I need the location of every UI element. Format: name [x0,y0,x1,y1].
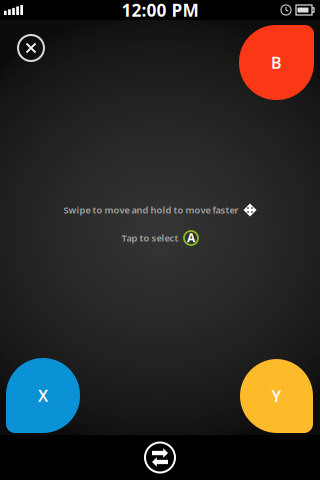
staticText: Swipe to move and hold to move faster [63,204,238,216]
staticText: 12:00 PM [121,0,198,21]
button[interactable]: X [6,358,80,433]
button[interactable]: Y [240,359,313,433]
button[interactable]: B [239,25,314,100]
staticText: X [38,385,48,406]
button[interactable]: Close [9,26,53,70]
staticText: Y [271,385,281,407]
button[interactable]: Swap controller [137,435,182,480]
staticText: Tap to select [121,232,178,244]
staticText: B [271,52,282,73]
staticText: A [187,229,195,245]
